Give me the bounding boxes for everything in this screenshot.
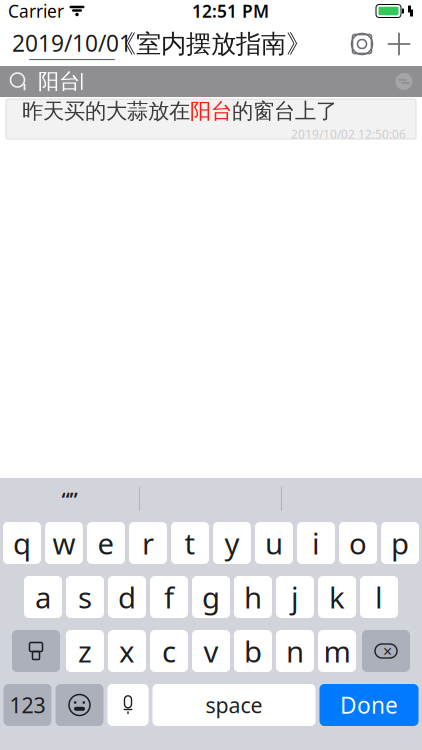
button[interactable]: d: [108, 576, 146, 618]
staticText: r: [142, 523, 154, 562]
staticText: 《室内摆放指南》: [111, 28, 311, 59]
staticText: t: [184, 523, 195, 562]
staticText: space: [205, 691, 262, 719]
button[interactable]: Shift: [12, 630, 60, 672]
button[interactable]: q: [3, 522, 41, 564]
staticText: w: [52, 523, 75, 562]
button[interactable]: Add: [378, 31, 412, 57]
button[interactable]: g: [192, 576, 230, 618]
button[interactable]: j: [276, 576, 314, 618]
button[interactable]: m: [318, 630, 356, 672]
button[interactable]: h: [234, 576, 272, 618]
staticText: Done: [340, 690, 398, 720]
button[interactable]: b: [234, 630, 272, 672]
button[interactable]: v: [192, 630, 230, 672]
staticText: n: [286, 631, 304, 670]
button[interactable]: f: [150, 576, 188, 618]
button[interactable]: t: [171, 522, 209, 564]
staticText: q: [13, 523, 31, 562]
staticText: d: [118, 577, 136, 616]
staticText: s: [78, 577, 92, 616]
button[interactable]: e: [87, 522, 125, 564]
staticText: b: [244, 631, 262, 670]
staticText: a: [35, 577, 51, 616]
staticText: j: [291, 577, 299, 616]
staticText: “”: [61, 486, 77, 512]
button[interactable]: Dictation: [107, 684, 148, 726]
button[interactable]: o: [339, 522, 377, 564]
button[interactable]: n: [276, 630, 314, 672]
button[interactable]: y: [213, 522, 251, 564]
staticText: 2019/10/01: [12, 28, 132, 58]
staticText: Carrier: [8, 0, 64, 22]
button[interactable]: space: [152, 684, 315, 726]
staticText: p: [391, 523, 409, 562]
staticText: v: [203, 631, 218, 670]
staticText: 昨天买的大蒜放在: [22, 98, 190, 124]
staticText: k: [329, 577, 345, 616]
staticText: 阳台: [190, 98, 232, 124]
staticText: m: [323, 631, 350, 670]
button[interactable]: “”: [0, 479, 139, 519]
staticText: x: [119, 631, 135, 670]
button[interactable]: 2019/10/01: [10, 28, 134, 60]
staticText: i: [312, 523, 320, 562]
button[interactable]: Clear text: [394, 71, 422, 91]
staticText: ×: [383, 640, 392, 662]
button[interactable]: p: [381, 522, 419, 564]
staticText: g: [202, 577, 220, 616]
button[interactable]: l: [360, 576, 398, 618]
staticText: h: [244, 577, 262, 616]
staticText: z: [78, 631, 92, 670]
staticText: e: [97, 523, 114, 562]
button[interactable]: u: [255, 522, 293, 564]
staticText: o: [349, 523, 367, 562]
button[interactable]: Done: [319, 684, 418, 726]
button[interactable]: Emoji keyboard: [55, 684, 103, 726]
staticText: f: [164, 577, 174, 616]
button[interactable]: Delete: [362, 630, 410, 672]
button[interactable]: a: [24, 576, 62, 618]
staticText: 阳台: [38, 68, 80, 95]
button[interactable]: 昨天买的大蒜放在: [6, 99, 416, 139]
button[interactable]: Settings: [346, 32, 378, 56]
staticText: 123: [9, 691, 45, 719]
button[interactable]: z: [66, 630, 104, 672]
button[interactable]: 123: [3, 684, 51, 726]
button[interactable]: r: [129, 522, 167, 564]
staticText: u: [265, 523, 283, 562]
staticText: l: [375, 577, 383, 616]
button[interactable]: w: [45, 522, 83, 564]
staticText: y: [224, 523, 239, 562]
button[interactable]: c: [150, 630, 188, 672]
staticText: c: [162, 631, 176, 670]
staticText: 12:51 PM: [192, 0, 269, 22]
button[interactable]: s: [66, 576, 104, 618]
staticText: 2019/10/02 12:50:06: [291, 126, 406, 142]
staticText: 的窗台上了: [232, 98, 337, 124]
button[interactable]: k: [318, 576, 356, 618]
button[interactable]: x: [108, 630, 146, 672]
button[interactable]: i: [297, 522, 335, 564]
